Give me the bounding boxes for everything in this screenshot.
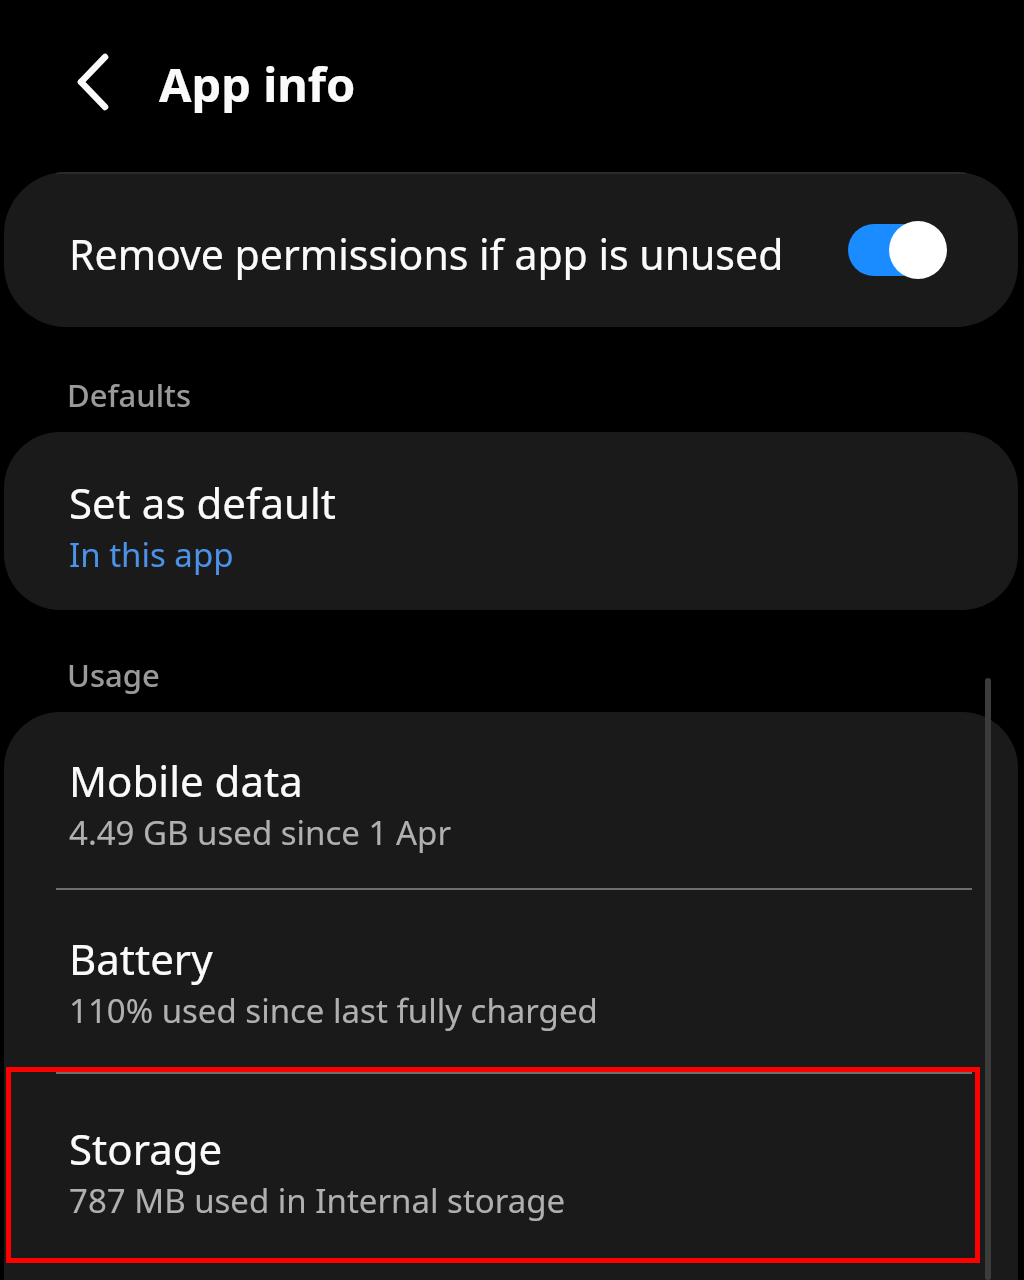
staticText: 787 MB used in Internal storage — [69, 1178, 566, 1223]
staticText: App info — [159, 52, 356, 116]
staticText: 110% used since last fully charged — [69, 988, 598, 1033]
button[interactable]: Storage — [4, 1074, 1018, 1264]
staticText: In this app — [69, 532, 234, 577]
button[interactable]: Battery — [4, 890, 1018, 1072]
staticText: 4.49 GB used since 1 Apr — [69, 810, 452, 855]
staticText: Storage — [69, 1120, 223, 1177]
staticText: Mobile data — [69, 752, 303, 809]
staticText: Usage — [67, 654, 160, 696]
button[interactable]: Mobile data — [4, 712, 1018, 888]
staticText: Battery — [69, 930, 213, 987]
staticText: Defaults — [67, 374, 191, 416]
button[interactable]: Back — [52, 47, 128, 117]
button[interactable]: Remove permissions toggle — [842, 210, 964, 290]
staticText: Remove permissions if app is unused — [69, 226, 784, 282]
button[interactable]: Remove permissions if app is unused — [4, 172, 1018, 327]
staticText: Set as default — [69, 474, 336, 531]
button[interactable]: Set as default — [4, 432, 1018, 610]
